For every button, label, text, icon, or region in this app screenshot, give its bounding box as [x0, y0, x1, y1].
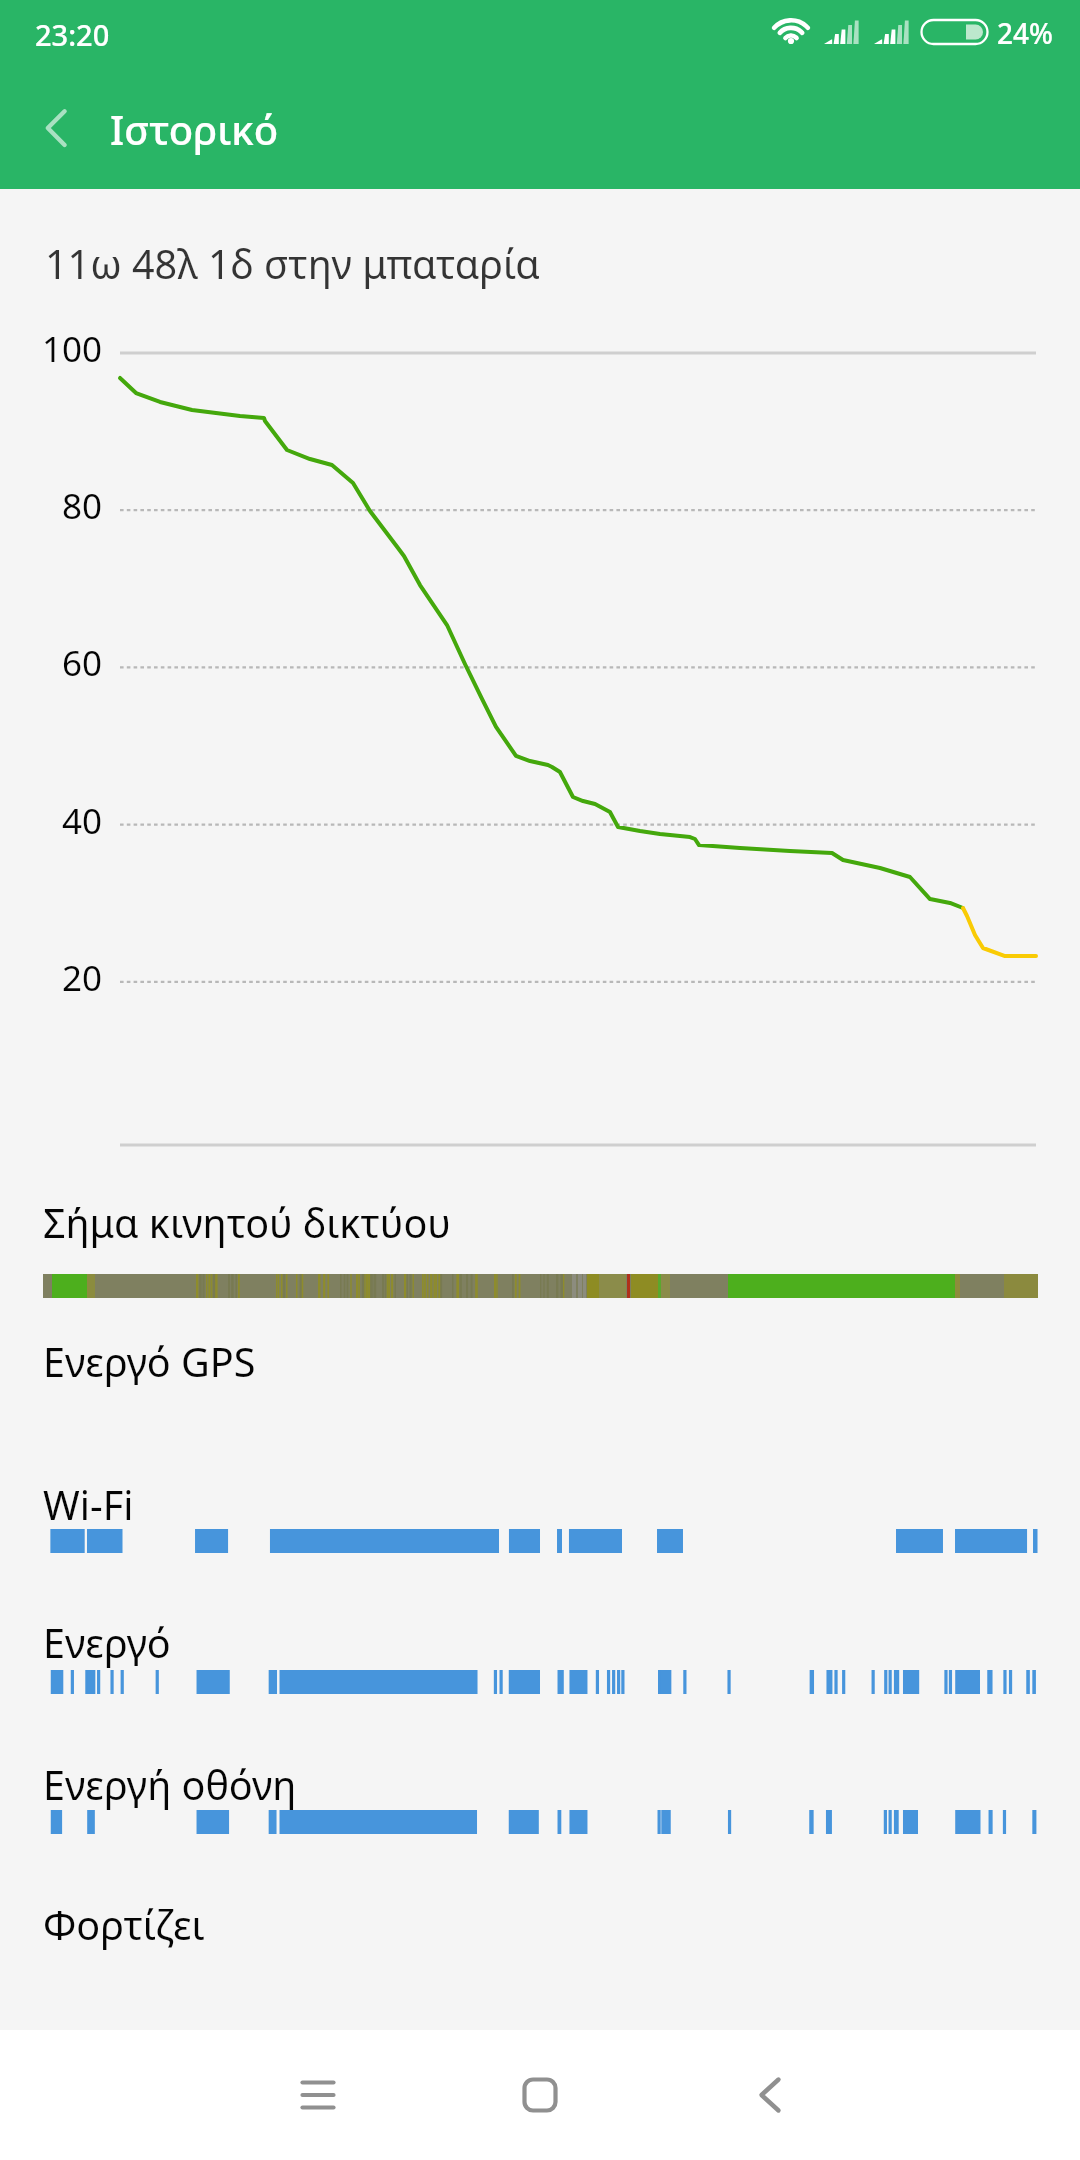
button[interactable]: Back: [702, 2030, 832, 2160]
button[interactable]: Home: [475, 2030, 605, 2160]
staticText: 40: [0, 797, 102, 845]
staticText: 100: [0, 325, 102, 373]
staticText: Σήμα κινητού δικτύου: [43, 1196, 451, 1250]
staticText: 60: [0, 639, 102, 687]
staticText: Ενεργό GPS: [43, 1335, 256, 1389]
staticText: 24%: [997, 14, 1053, 52]
staticText: 23:20: [35, 15, 110, 54]
staticText: Ιστορικό: [110, 102, 279, 156]
staticText: 80: [0, 482, 102, 530]
staticText: Φορτίζει: [43, 1898, 205, 1952]
staticText: 20: [0, 954, 102, 1002]
staticText: 11ω 48λ 1δ στην μπαταρία: [45, 237, 540, 291]
staticText: Ενεργή οθόνη: [43, 1758, 297, 1812]
staticText: Ενεργό: [43, 1616, 171, 1670]
button[interactable]: Back: [24, 92, 100, 168]
button[interactable]: Recents: [253, 2030, 383, 2160]
staticText: Wi-Fi: [43, 1478, 134, 1532]
